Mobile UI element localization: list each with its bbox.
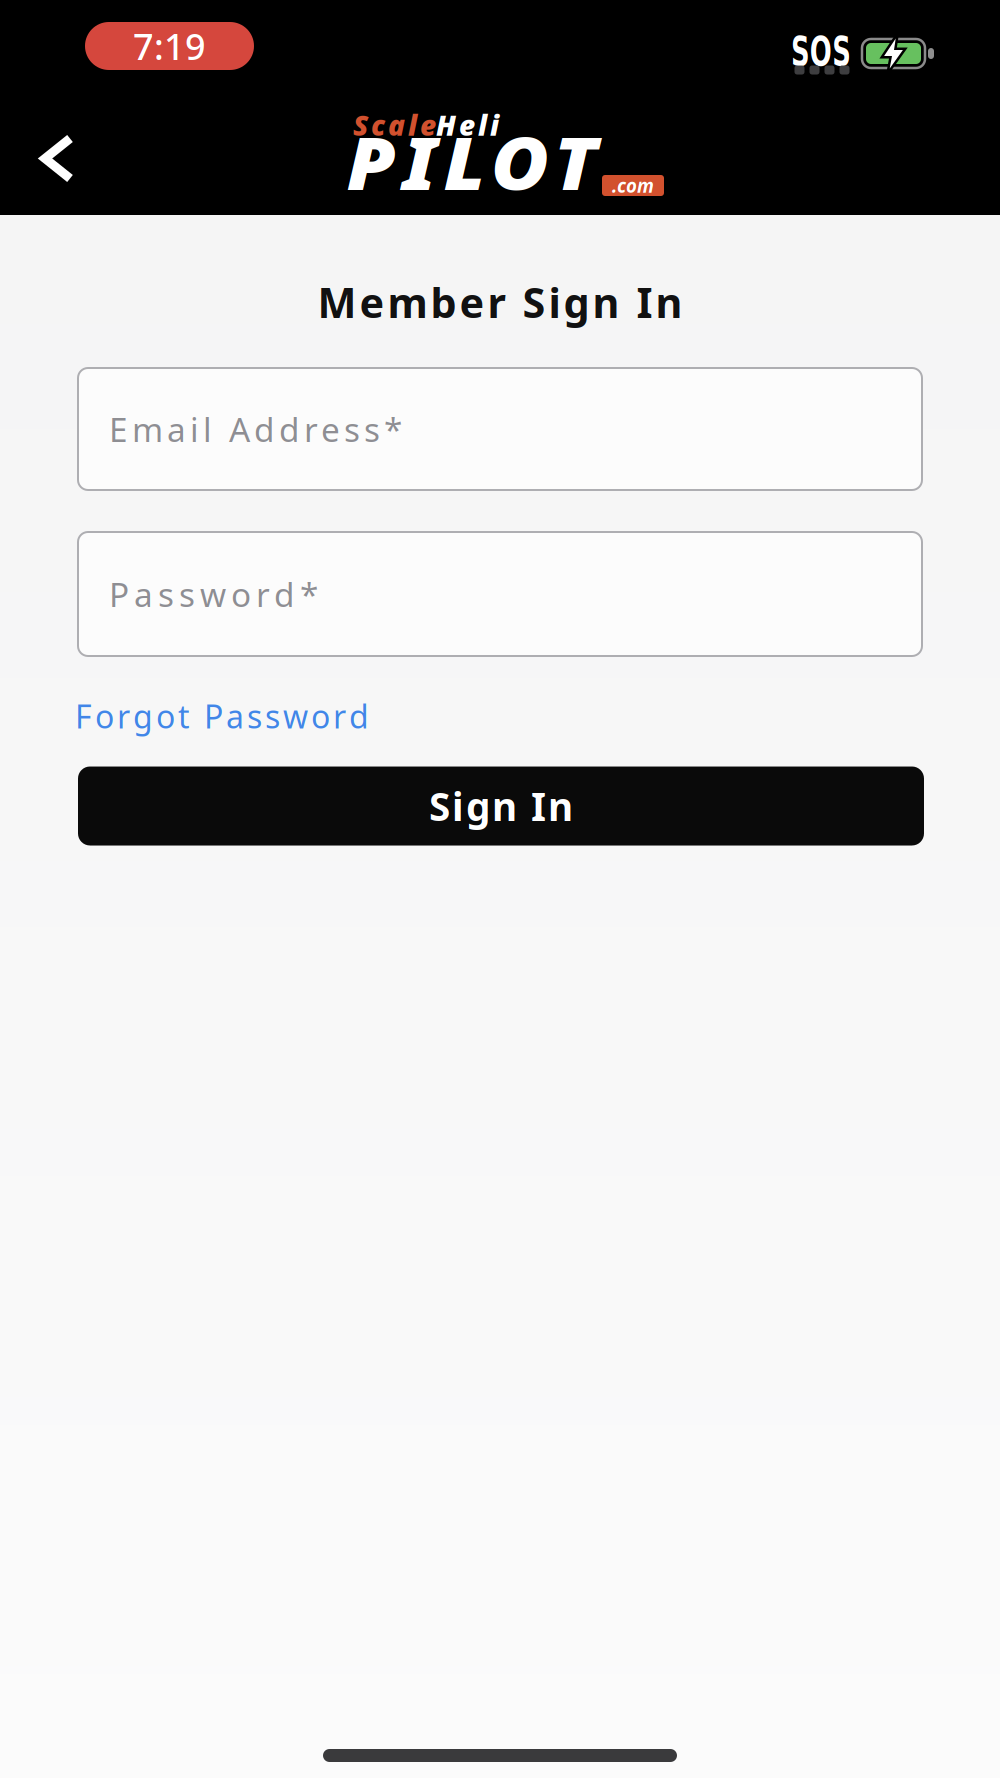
staticText: SOS (779, 29, 862, 75)
staticText: Member Sign In (317, 275, 682, 329)
staticText: Password* (109, 572, 318, 616)
staticText: Forgot Password (75, 695, 369, 737)
button[interactable]: Sign In (78, 766, 924, 845)
button[interactable]: Forgot Password (75, 695, 369, 737)
staticText: Sign In (429, 780, 573, 832)
button[interactable]: Back (21, 117, 91, 197)
button[interactable]: Password (78, 532, 922, 656)
staticText: Heli (436, 106, 499, 144)
staticText: Email Address* (109, 407, 402, 451)
staticText: .com (612, 173, 654, 198)
staticText: PILOT (358, 114, 586, 210)
staticText: Scale (353, 106, 436, 144)
button[interactable]: Email Address (78, 368, 922, 490)
staticText: 7:19 (133, 22, 206, 70)
